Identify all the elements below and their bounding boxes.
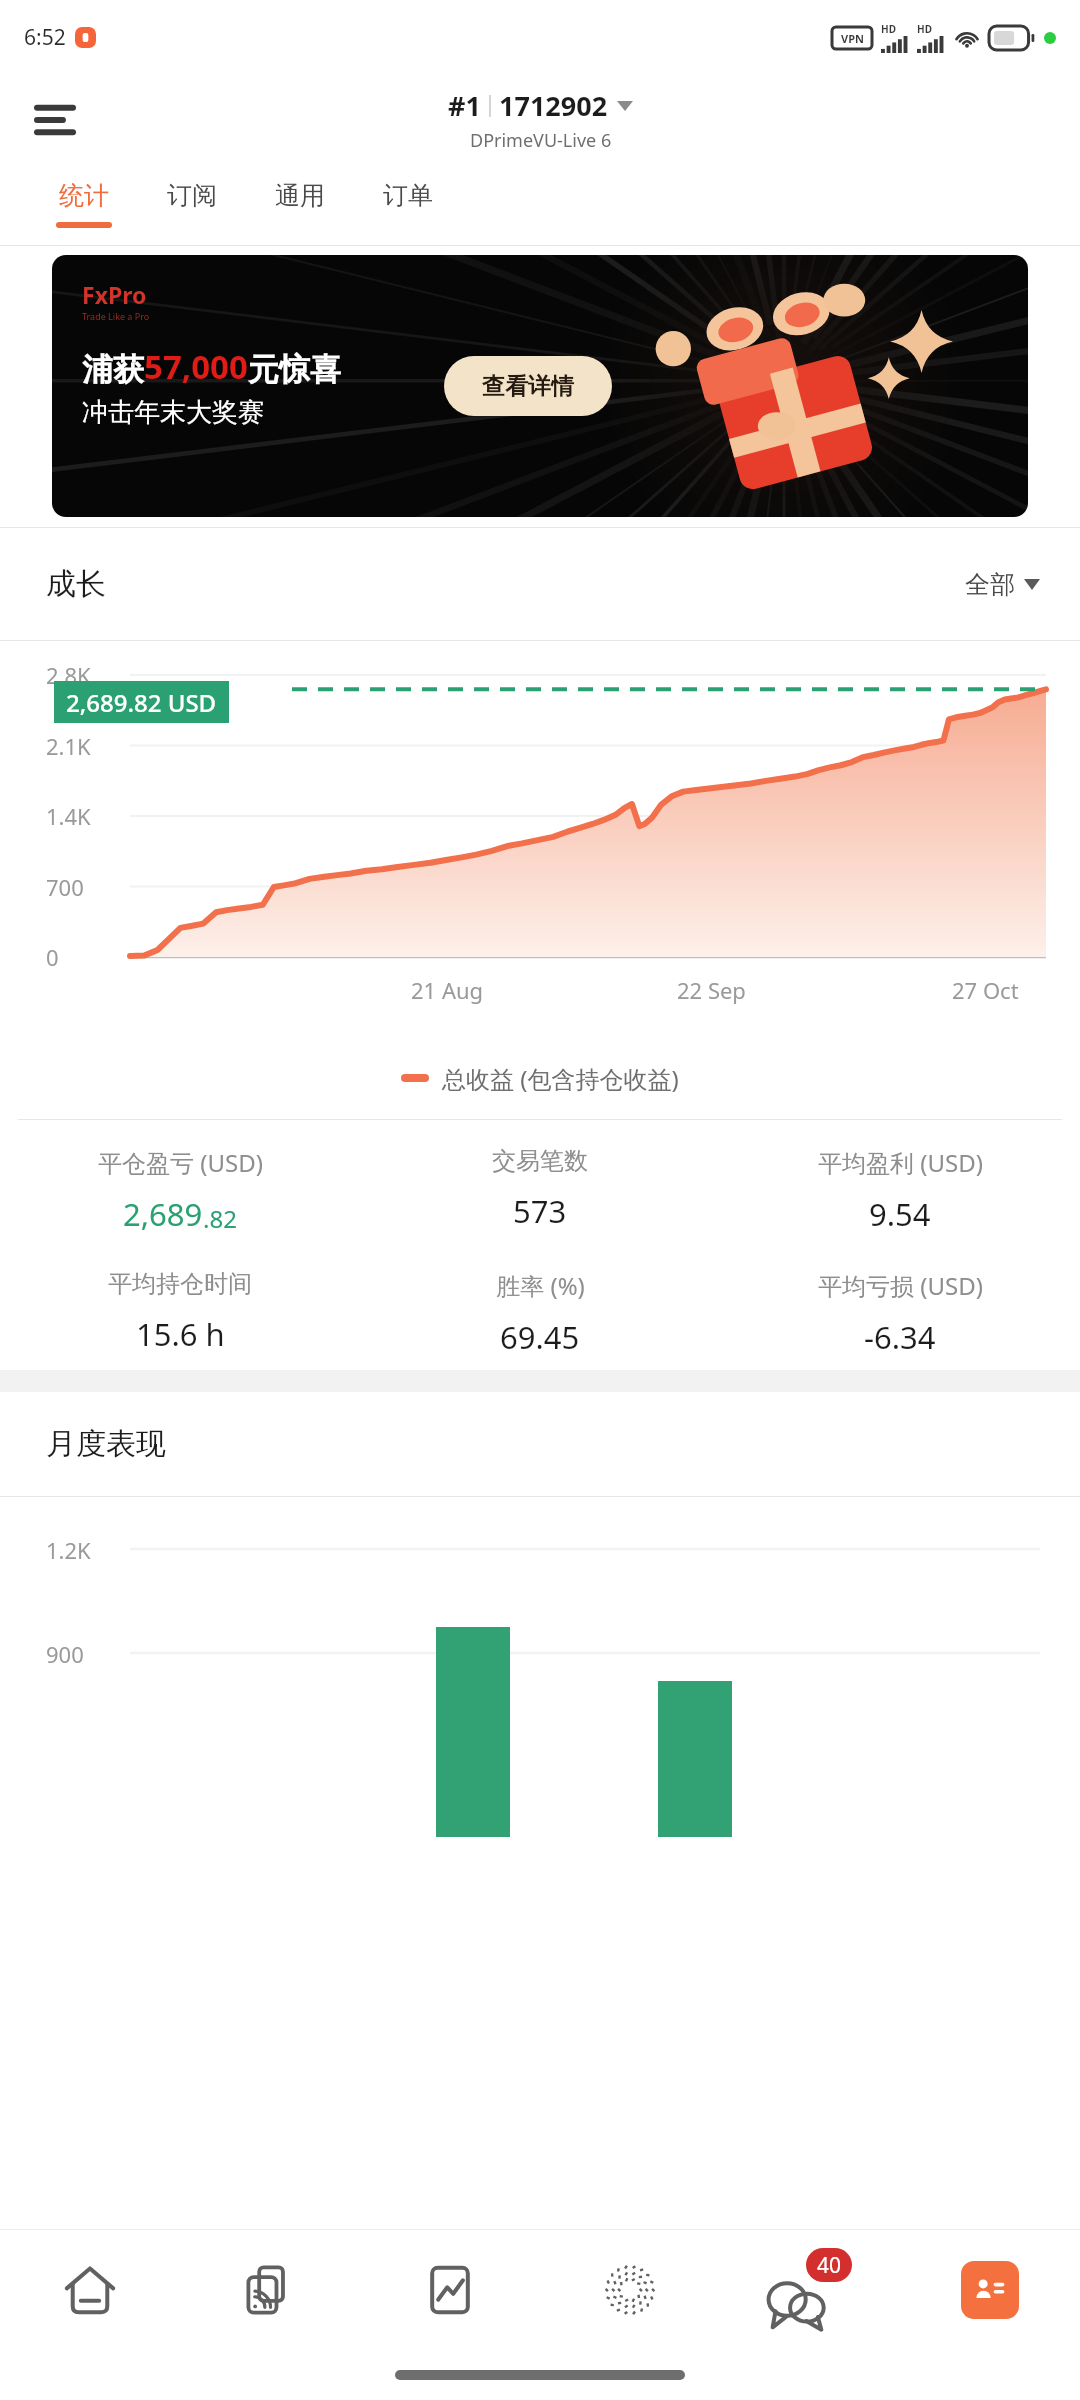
staticText: 平均持仓时间 [108, 1269, 252, 1299]
staticText: 573 [513, 1190, 567, 1232]
button[interactable]: 通用 [246, 166, 354, 246]
staticText: VPN [841, 31, 864, 46]
button[interactable]: Charts [360, 2230, 540, 2350]
staticText: 平均亏损 (USD) [818, 1269, 983, 1302]
button[interactable]: 统计 [30, 166, 138, 246]
staticText: 0 [46, 942, 59, 972]
staticText: 平均盈利 (USD) [818, 1146, 983, 1179]
staticText: 全部 [965, 569, 1015, 600]
staticText: 1.2K [46, 1535, 91, 1565]
staticText: 总收益 (包含持仓收益) [442, 1062, 679, 1095]
staticText: #1 [448, 87, 481, 124]
staticText: 成长 [46, 565, 106, 603]
button[interactable]: Account [900, 2230, 1080, 2350]
staticText: DPrimeVU-Live 6 [470, 128, 612, 153]
staticText: FxPro [82, 279, 147, 310]
staticText: 700 [46, 872, 84, 902]
staticText: 通用 [275, 180, 325, 211]
staticText: 胜率 (%) [496, 1269, 585, 1302]
staticText: 40 [817, 2251, 842, 2280]
staticText: 统计 [59, 180, 109, 211]
staticText: 平仓盈亏 (USD) [98, 1146, 263, 1179]
staticText: 2,689 [123, 1193, 203, 1235]
staticText: HD [917, 22, 932, 36]
staticText: 57,000 [144, 344, 248, 389]
staticText: Trade Like a Pro [82, 310, 150, 322]
button[interactable]: Menu [26, 91, 84, 149]
staticText: 交易笔数 [492, 1146, 588, 1176]
button[interactable]: 订阅 [138, 166, 246, 246]
staticText: 查看详情 [482, 372, 574, 401]
staticText: 1712902 [499, 87, 608, 124]
button[interactable]: Devices [180, 2230, 360, 2350]
staticText: 2.8K [46, 660, 91, 690]
staticText: 月度表现 [46, 1425, 166, 1463]
staticText: 22 Sep [677, 975, 746, 1005]
button[interactable]: Messages, 40 unread [720, 2230, 900, 2350]
staticText: 27 Oct [952, 975, 1019, 1005]
button[interactable]: FxPro [52, 255, 1028, 517]
staticText: 21 Aug [411, 975, 484, 1005]
staticText: 2,689.82 USD [66, 686, 217, 719]
staticText: 15.6 h [136, 1313, 225, 1355]
staticText: .82 [203, 1202, 237, 1235]
button[interactable]: 全部 [965, 569, 1040, 600]
staticText: 浦获 [82, 350, 144, 389]
staticText: -6.34 [864, 1316, 936, 1358]
staticText: 1.4K [46, 801, 91, 831]
staticText: 69.45 [500, 1316, 580, 1358]
staticText: HD [881, 22, 896, 36]
button[interactable]: 订单 [354, 166, 462, 246]
staticText: 2.1K [46, 731, 91, 761]
staticText: 订单 [383, 180, 433, 211]
staticText: 元惊喜 [248, 350, 341, 389]
staticText: 9.54 [869, 1193, 931, 1235]
staticText: 900 [46, 1639, 84, 1669]
button[interactable]: 查看详情 [444, 356, 612, 416]
staticText: 冲击年末大奖赛 [82, 396, 264, 429]
staticText: 订阅 [167, 180, 217, 211]
staticText: 6:52 [24, 23, 66, 52]
button[interactable]: Home [0, 2230, 180, 2350]
button[interactable]: #1 [448, 87, 633, 153]
button[interactable]: Community [540, 2230, 720, 2350]
